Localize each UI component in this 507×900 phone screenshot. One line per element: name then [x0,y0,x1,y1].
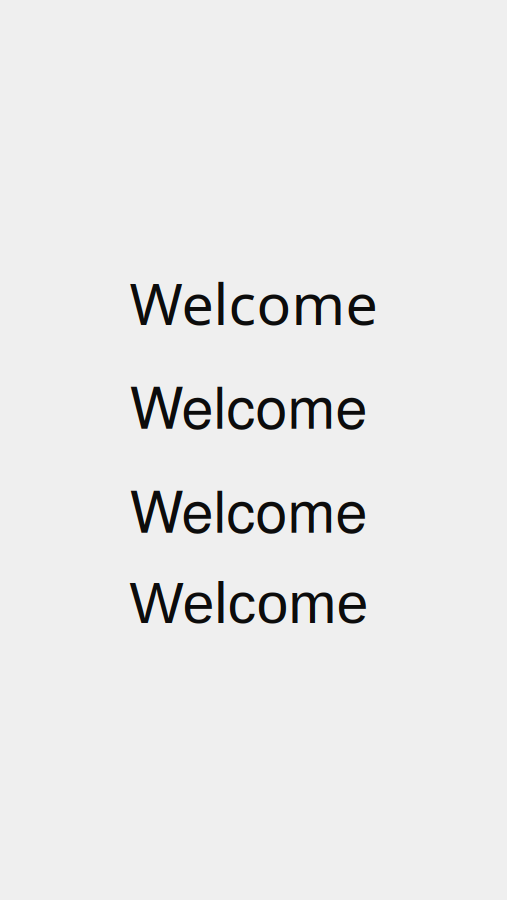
staticText: Welcome [129,571,368,635]
staticText: Welcome [129,363,367,445]
staticText: Welcome [129,467,367,549]
staticText: Welcome [129,265,377,341]
